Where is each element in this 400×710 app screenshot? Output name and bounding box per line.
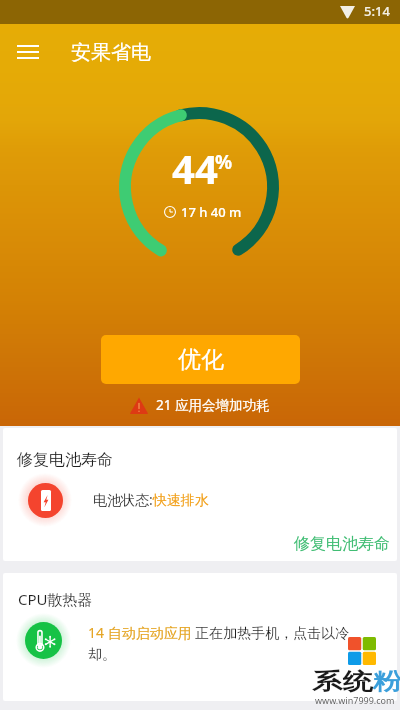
button[interactable]: CPU散热器 [3, 573, 397, 701]
button[interactable]: Menu [0, 24, 56, 80]
staticText: 修复电池寿命 [294, 534, 390, 554]
staticText: 5:14 [364, 2, 390, 20]
staticText: 系统粉 [312, 668, 400, 697]
staticText: 44 [172, 141, 218, 195]
button[interactable]: 修复电池寿命 [3, 428, 397, 561]
staticText: 优化 [178, 345, 224, 374]
button[interactable]: 修复电池寿命 [282, 522, 397, 561]
staticText: 修复电池寿命 [17, 450, 113, 470]
staticText: CPU散热器 [18, 589, 93, 609]
button[interactable]: 优化 [101, 335, 300, 384]
staticText: 安果省电 [71, 40, 151, 65]
staticText: 21 应用会增加功耗 [156, 396, 270, 414]
staticText: www.win7999.com [315, 694, 395, 706]
staticText: 14 自动启动应用 正在加热手机，点击以冷却。 [88, 623, 350, 663]
staticText: % [215, 149, 233, 175]
staticText: 电池状态:快速排水 [93, 490, 209, 509]
staticText: 17 h 40 m [181, 203, 242, 221]
